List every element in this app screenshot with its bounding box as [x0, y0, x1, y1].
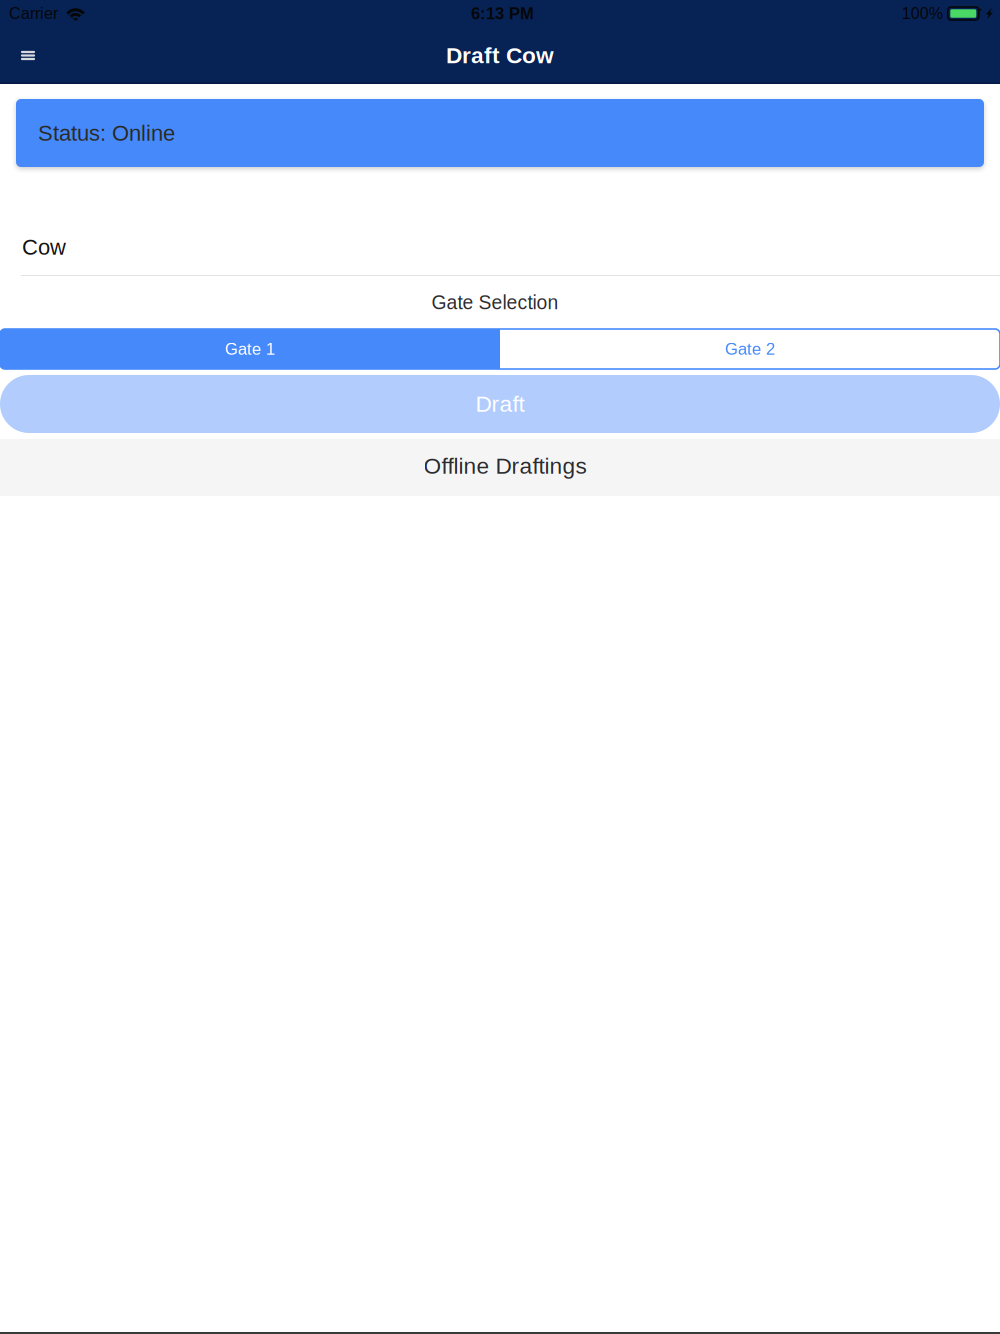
button[interactable]: Draft: [0, 375, 1000, 433]
staticText: 100%: [902, 5, 943, 22]
staticText: Draft: [475, 391, 524, 417]
button[interactable]: Status: Online: [16, 99, 984, 167]
staticText: Gate Selection: [431, 292, 558, 313]
staticText: Gate 2: [725, 340, 775, 358]
button[interactable]: Gate 2: [500, 329, 1000, 369]
staticText: Carrier: [9, 5, 58, 22]
staticText: Gate 1: [225, 340, 275, 358]
staticText: Cow: [22, 235, 66, 259]
button[interactable]: Offline Draftings: [0, 439, 1000, 496]
button[interactable]: Menu: [0, 27, 56, 83]
staticText: 6:13 PM: [471, 4, 534, 23]
staticText: Status: Online: [38, 121, 175, 145]
button[interactable]: Gate 1: [0, 329, 500, 369]
staticText: Offline Draftings: [423, 453, 586, 479]
staticText: Draft Cow: [446, 43, 554, 68]
